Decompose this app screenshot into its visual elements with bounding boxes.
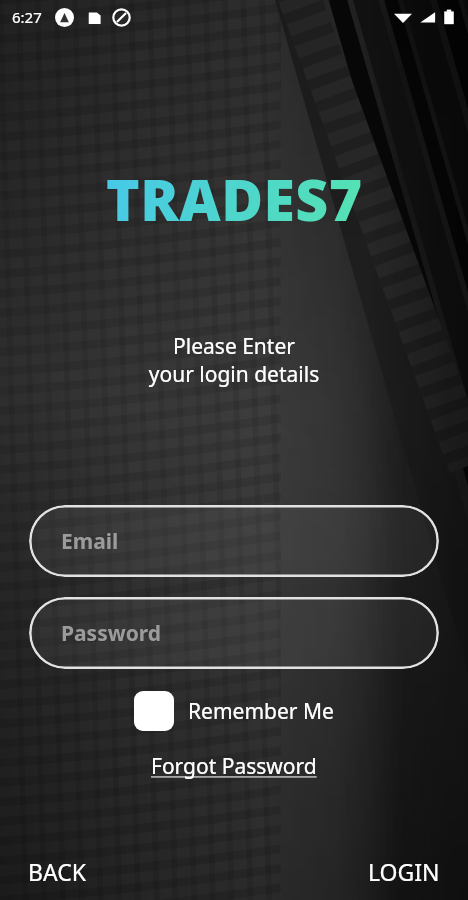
staticText: Password <box>61 619 162 648</box>
button[interactable]: Password <box>29 597 439 669</box>
staticText: Please Enter your login details <box>0 332 468 388</box>
button[interactable]: Remember Me checkbox <box>134 689 334 733</box>
button[interactable]: Forgot Password <box>143 749 325 784</box>
staticText: Remember Me <box>188 697 334 726</box>
staticText: 6:27 <box>12 7 42 27</box>
staticText: TRADES7 <box>106 160 363 238</box>
other: Remember Me checkbox <box>134 691 174 731</box>
staticText: Email <box>61 527 119 556</box>
staticText: BACK <box>28 856 86 887</box>
button[interactable]: Email <box>29 505 439 577</box>
staticText: LOGIN <box>368 856 440 887</box>
button[interactable]: LOGIN <box>350 846 468 897</box>
button[interactable]: BACK <box>0 846 104 897</box>
